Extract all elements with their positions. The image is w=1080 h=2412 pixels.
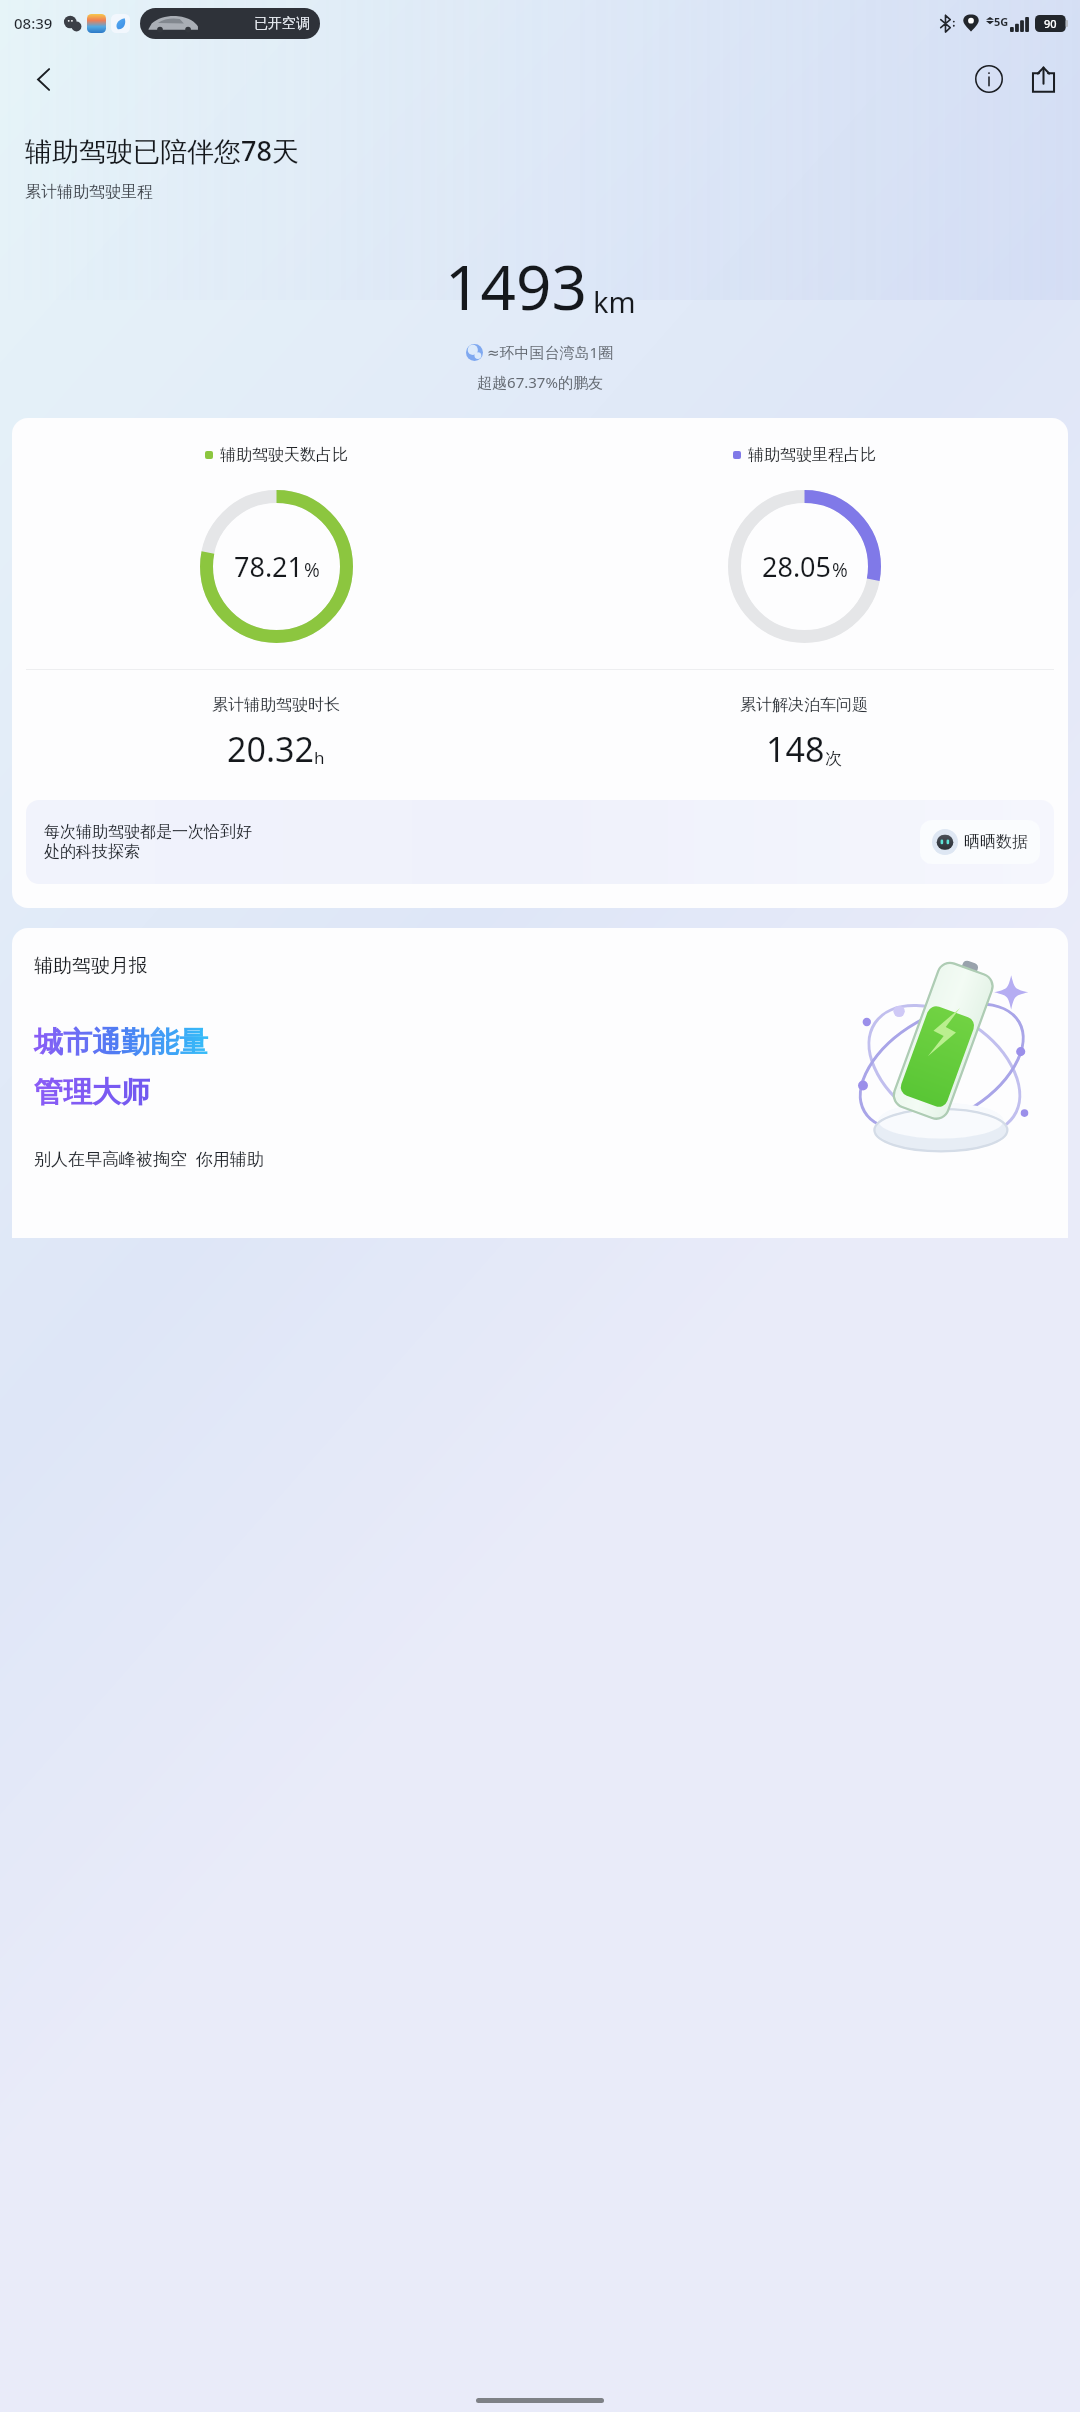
staticText: 辅助驾驶里程占比	[748, 445, 876, 465]
staticText: 别人在早高峰被掏空 你用辅助	[34, 1147, 264, 1170]
staticText: 处的科技探索	[44, 842, 140, 862]
staticText: 90	[1044, 16, 1057, 31]
staticText: %	[304, 557, 320, 583]
button[interactable]: 晒晒数据	[920, 820, 1040, 864]
button[interactable]: 辅助驾驶月报	[12, 928, 1068, 1238]
staticText: 城市通勤能量	[34, 1024, 208, 1061]
staticText: km	[593, 282, 636, 321]
staticText: 辅助驾驶月报	[34, 954, 148, 978]
button[interactable]: 说明	[965, 55, 1013, 103]
staticText: 08:39	[14, 13, 53, 33]
staticText: 78.21	[234, 548, 304, 585]
staticText: ≈环中国台湾岛1圈	[487, 342, 614, 362]
staticText: 已开空调	[254, 15, 310, 33]
staticText: 1493	[445, 244, 587, 328]
staticText: 5G	[994, 14, 1009, 29]
staticText: 次	[825, 748, 842, 769]
staticText: 管理大师	[34, 1074, 150, 1111]
staticText: 20.32	[227, 726, 314, 772]
staticText: 148	[766, 726, 825, 772]
staticText: 每次辅助驾驶都是一次恰到好	[44, 822, 252, 842]
button[interactable]: 分享	[1019, 55, 1067, 103]
staticText: 累计辅助驾驶里程	[25, 182, 153, 202]
button[interactable]: 车辆状态：已开空调	[140, 8, 320, 39]
button[interactable]: 返回	[20, 55, 68, 103]
staticText: 超越67.37%的鹏友	[0, 372, 1080, 392]
staticText: 辅助驾驶已陪伴您78天	[25, 132, 299, 169]
staticText: 28.05	[762, 548, 832, 585]
staticText: 累计解决泊车问题	[740, 695, 868, 715]
staticText: %	[832, 557, 848, 583]
staticText: 辅助驾驶天数占比	[220, 445, 348, 465]
staticText: 晒晒数据	[964, 832, 1028, 852]
staticText: 累计辅助驾驶时长	[212, 695, 340, 715]
staticText: h	[314, 746, 325, 769]
